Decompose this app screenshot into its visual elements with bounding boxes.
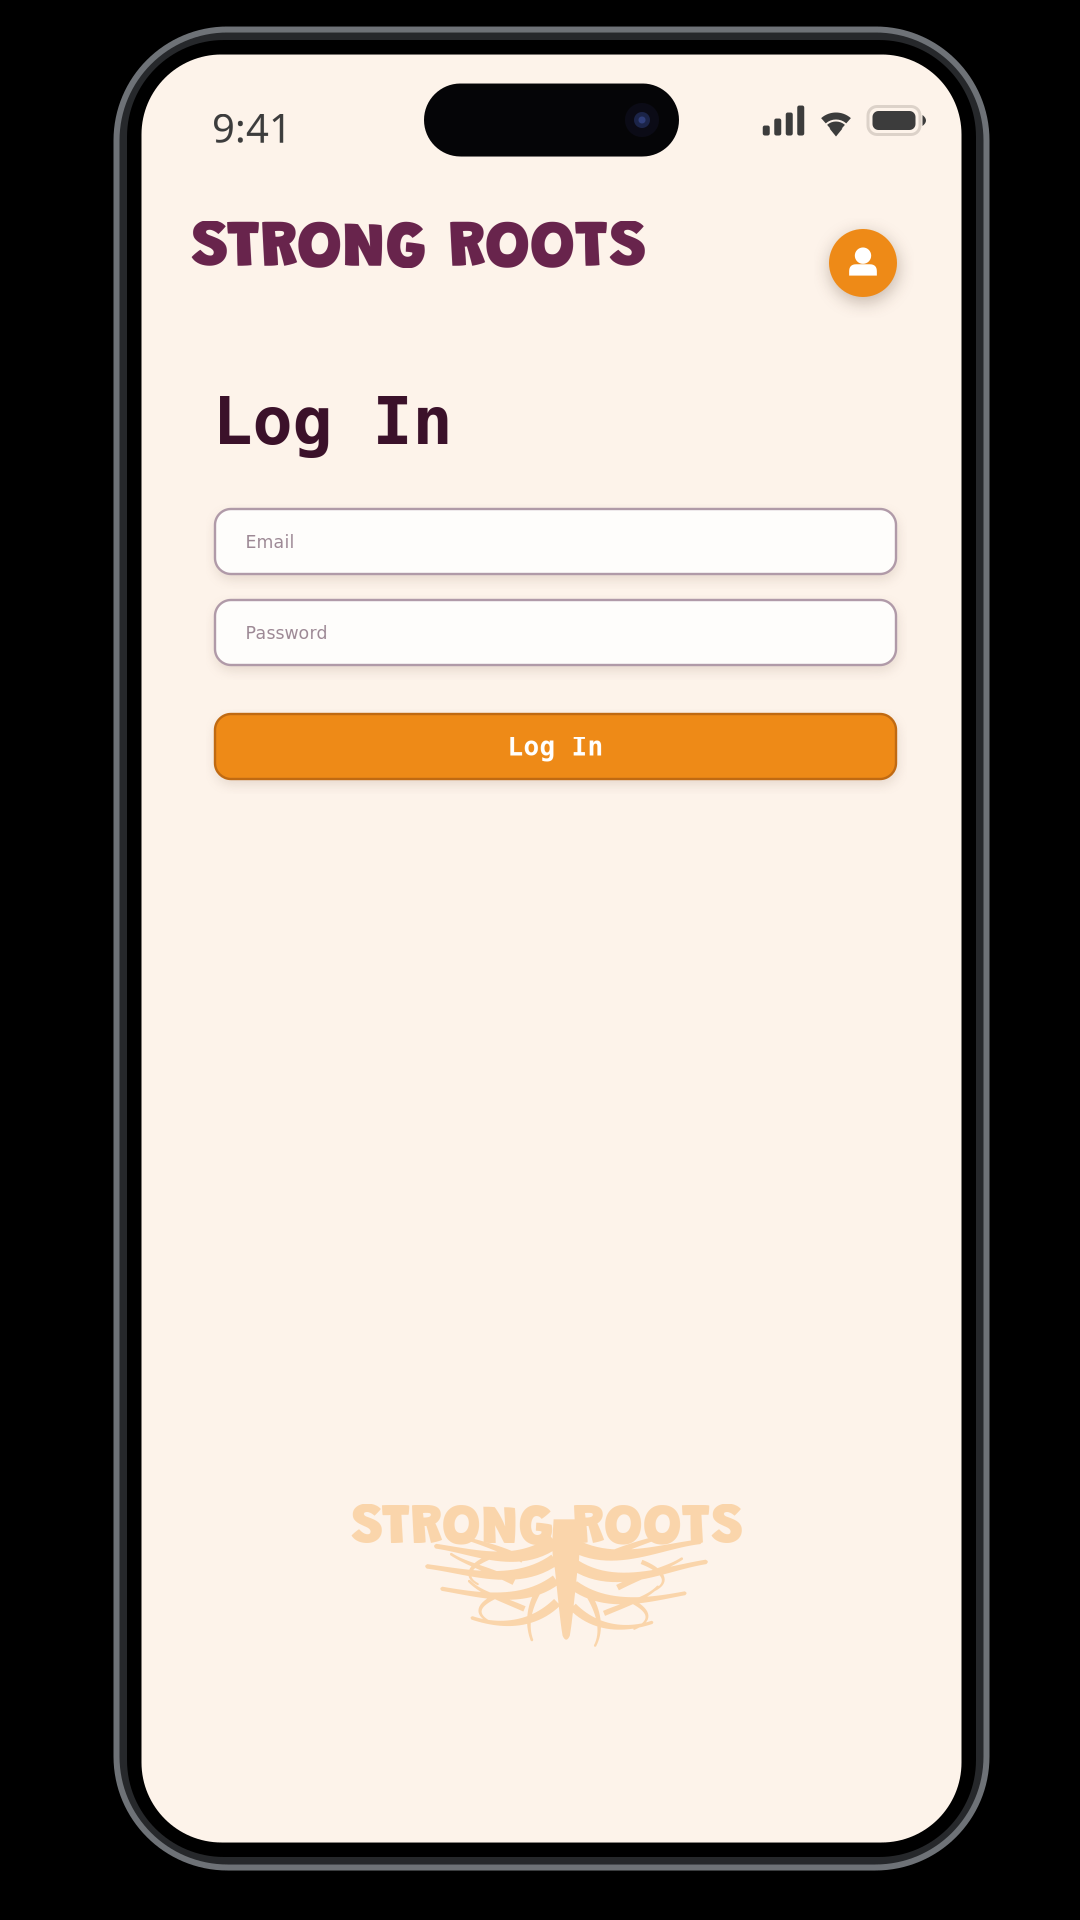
button[interactable]: Log In xyxy=(215,714,896,779)
staticText: Password xyxy=(245,623,327,643)
staticText: STRONG ROOTS xyxy=(191,217,647,283)
staticText: Email xyxy=(245,532,294,552)
staticText: Log In xyxy=(212,382,452,460)
staticText: Log In xyxy=(507,731,603,762)
button[interactable]: Account xyxy=(829,229,897,297)
staticText: STRONG ROOTS xyxy=(351,1501,744,1558)
staticText: 9:41 xyxy=(212,100,292,154)
